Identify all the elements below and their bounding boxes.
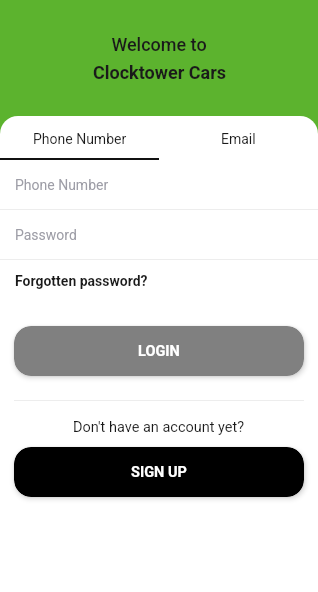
staticText: Clocktower Cars: [93, 62, 226, 83]
staticText: Welcome to: [111, 34, 207, 55]
button[interactable]: LOGIN: [14, 326, 304, 376]
button[interactable]: Phone Number: [0, 120, 159, 158]
staticText: LOGIN: [138, 343, 180, 360]
button[interactable]: Phone Number: [0, 160, 318, 209]
staticText: Phone Number: [15, 177, 109, 193]
staticText: Password: [15, 227, 77, 243]
button[interactable]: Password: [0, 210, 318, 259]
staticText: Don't have an account yet?: [73, 419, 245, 436]
staticText: Email: [221, 131, 256, 147]
staticText: SIGN UP: [131, 464, 187, 481]
button[interactable]: SIGN UP: [14, 447, 304, 497]
button[interactable]: Email: [159, 120, 318, 158]
button[interactable]: Forgotten password?: [0, 273, 148, 289]
staticText: Phone Number: [33, 131, 127, 147]
